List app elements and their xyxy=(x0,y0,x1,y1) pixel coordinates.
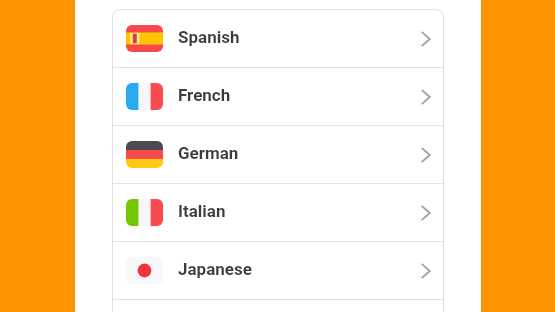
other: Open xyxy=(419,203,433,223)
other: Open xyxy=(419,87,433,107)
staticText: Italian xyxy=(178,201,226,221)
other: Open xyxy=(419,261,433,281)
other: Open xyxy=(419,29,433,49)
staticText: French xyxy=(178,85,231,105)
staticText: Spanish xyxy=(178,27,240,47)
button[interactable]: German xyxy=(112,126,444,183)
staticText: Japanese xyxy=(178,259,252,279)
button[interactable]: Spanish xyxy=(112,10,444,67)
button[interactable]: Japanese xyxy=(112,242,444,299)
button[interactable]: Italian xyxy=(112,184,444,241)
staticText: German xyxy=(178,143,239,163)
other: Open xyxy=(419,145,433,165)
button[interactable]: French xyxy=(112,68,444,125)
